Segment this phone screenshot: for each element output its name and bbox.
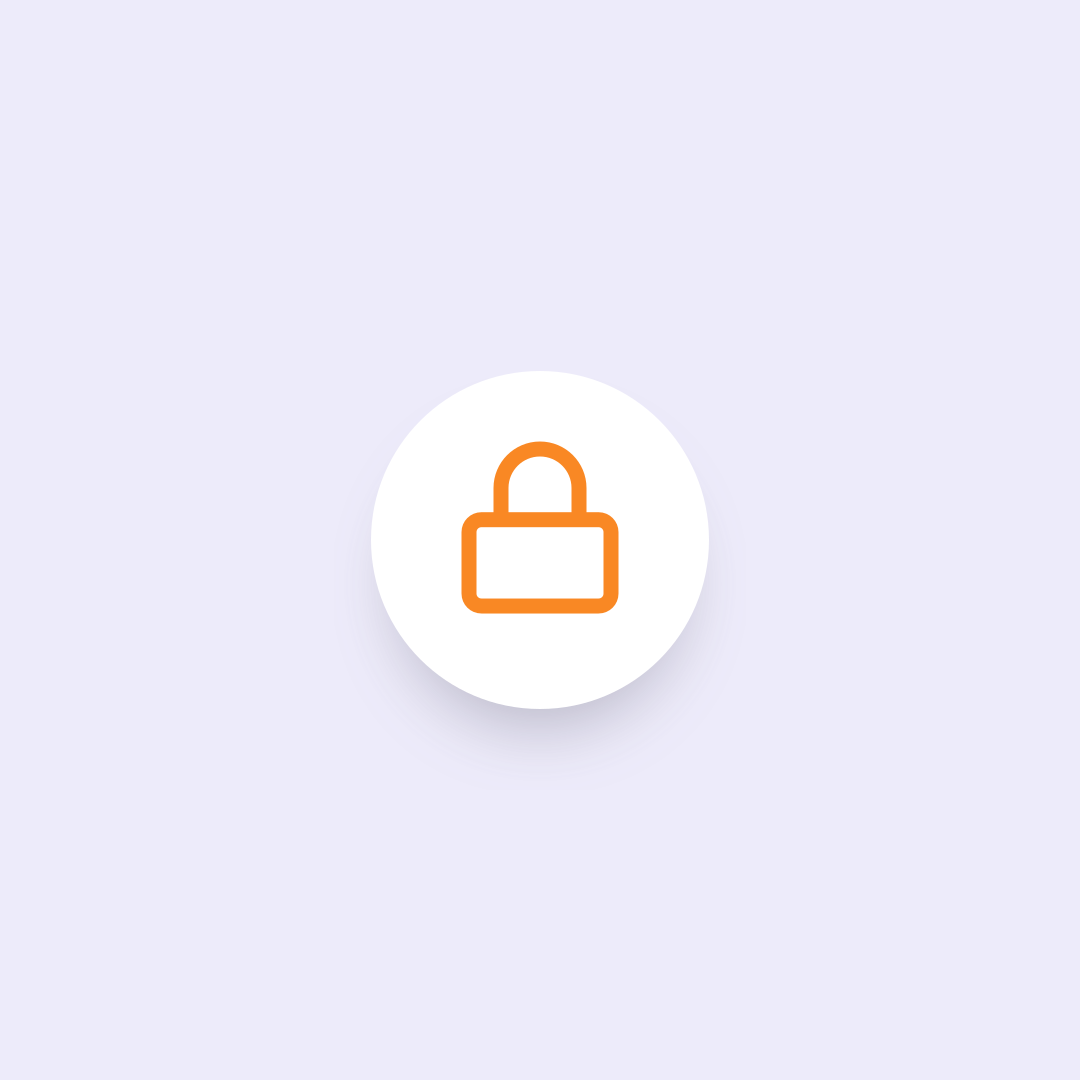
button[interactable]: Locked: [371, 371, 709, 709]
